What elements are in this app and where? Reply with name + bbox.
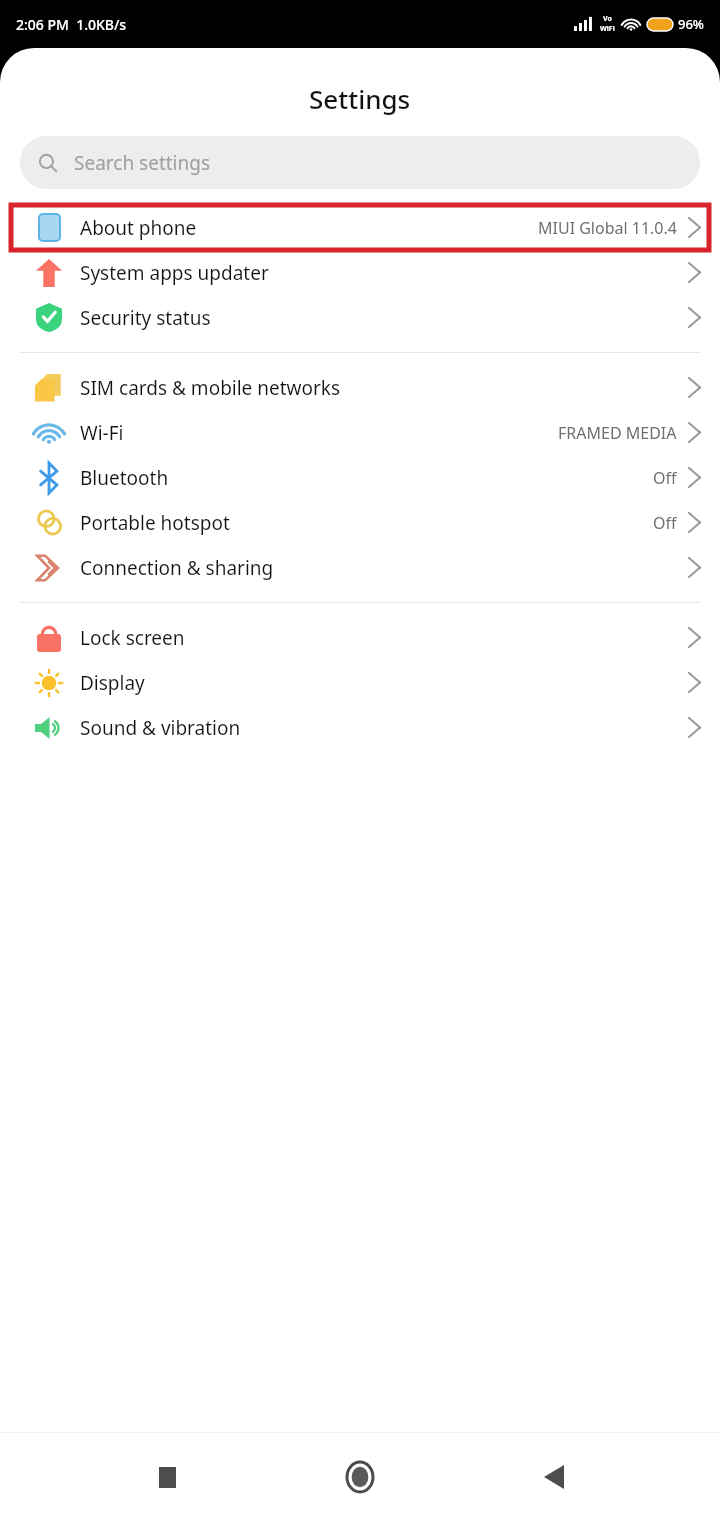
staticText: Off bbox=[653, 512, 677, 534]
staticText: Portable hotspot bbox=[80, 510, 230, 536]
button[interactable]: Recents bbox=[140, 1450, 194, 1504]
button[interactable]: Connection & sharing bbox=[0, 545, 720, 590]
button[interactable]: Back bbox=[527, 1450, 581, 1504]
button[interactable]: Sound & vibration bbox=[0, 705, 720, 750]
button[interactable]: About phone bbox=[0, 205, 720, 250]
staticText: Bluetooth bbox=[80, 465, 169, 491]
staticText: Settings bbox=[309, 81, 411, 116]
button[interactable]: Lock screen bbox=[0, 615, 720, 660]
staticText: Sound & vibration bbox=[80, 715, 241, 741]
button[interactable]: Bluetooth bbox=[0, 455, 720, 500]
button[interactable]: Portable hotspot bbox=[0, 500, 720, 545]
staticText: Off bbox=[653, 467, 677, 489]
button[interactable]: Wi-Fi bbox=[0, 410, 720, 455]
staticText: Security status bbox=[80, 305, 211, 331]
button[interactable]: Home bbox=[333, 1450, 387, 1504]
staticText: SIM cards & mobile networks bbox=[80, 375, 341, 401]
staticText: Search settings bbox=[74, 150, 211, 176]
button[interactable]: System apps updater bbox=[0, 250, 720, 295]
staticText: WiFi bbox=[600, 24, 615, 34]
staticText: FRAMED MEDIA bbox=[558, 422, 677, 444]
staticText: Vo bbox=[603, 14, 612, 24]
staticText: Display bbox=[80, 670, 145, 696]
staticText: MIUI Global 11.0.4 bbox=[538, 217, 677, 239]
staticText: Lock screen bbox=[80, 625, 185, 651]
button[interactable]: Security status bbox=[0, 295, 720, 340]
staticText: About phone bbox=[80, 215, 197, 241]
staticText: System apps updater bbox=[80, 260, 269, 286]
staticText: Connection & sharing bbox=[80, 555, 274, 581]
button[interactable]: Display bbox=[0, 660, 720, 705]
staticText: 96% bbox=[678, 15, 704, 33]
staticText: 2:06 PM 1.0KB/s bbox=[16, 15, 127, 34]
button[interactable]: SIM cards & mobile networks bbox=[0, 365, 720, 410]
button[interactable]: Search settings bbox=[20, 136, 700, 189]
staticText: Wi-Fi bbox=[80, 420, 124, 446]
